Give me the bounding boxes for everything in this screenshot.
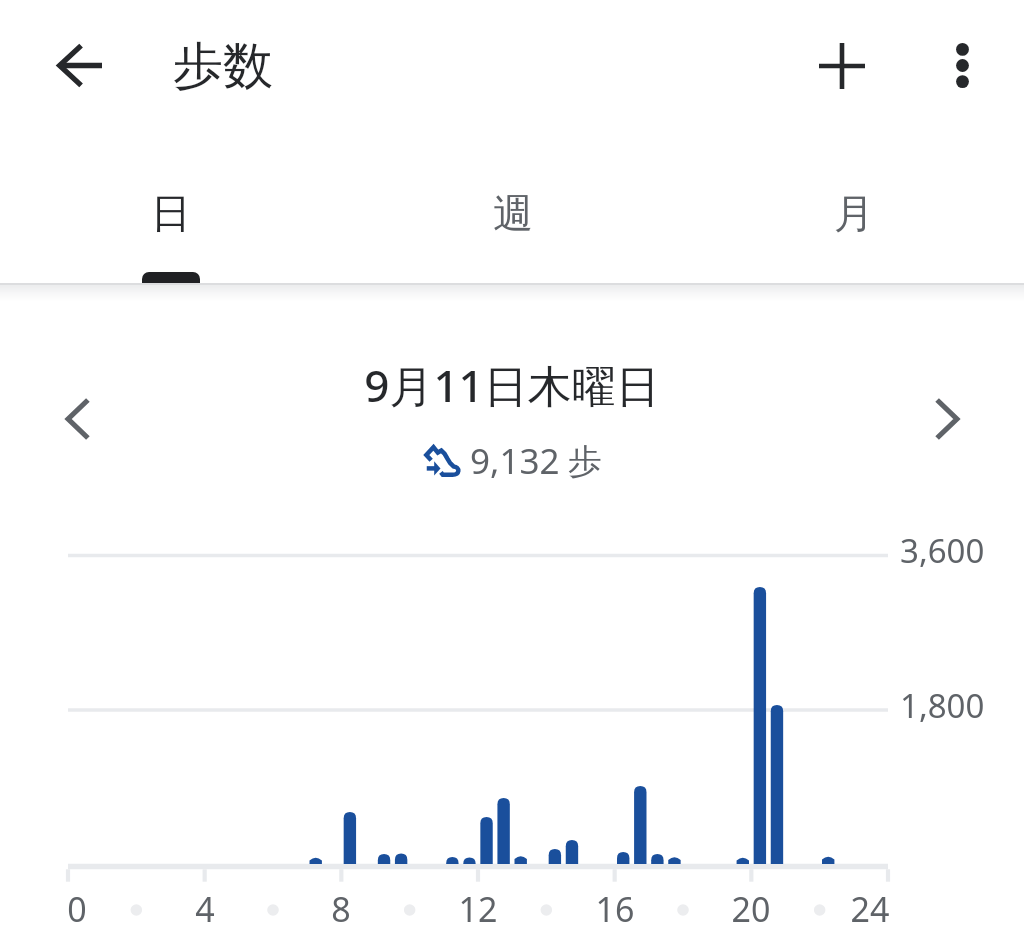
button[interactable]: 週 [342,130,683,285]
staticText: 0 [37,886,117,932]
staticText: 月 [834,188,874,238]
staticText: 16 [575,886,655,932]
button[interactable]: Back [39,25,119,105]
staticText: 日 [151,188,191,238]
staticText: 24 [830,886,910,932]
staticText: 8 [301,886,381,932]
staticText: 9,132 [470,437,560,485]
staticText: 12 [438,886,518,932]
staticText: 週 [493,188,533,238]
button[interactable]: 月 [683,130,1024,285]
button[interactable]: More options [922,25,1002,105]
button[interactable]: 日 [0,130,342,285]
button[interactable]: Next day [909,381,985,457]
staticText: 20 [711,886,791,932]
staticText: 1,800 [900,683,985,728]
staticText: 3,600 [900,528,985,573]
staticText: 歩 [568,440,602,483]
button[interactable]: Previous day [40,381,116,457]
staticText: 歩数 [173,35,273,98]
staticText: 9月11日木曜日 [364,355,660,415]
button[interactable]: Add [802,26,882,106]
staticText: 4 [165,886,245,932]
